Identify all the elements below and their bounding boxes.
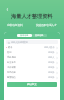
staticText: 其他信息 xyxy=(35,34,44,37)
button[interactable]: * xyxy=(4,45,60,50)
staticText: 基本信息 xyxy=(20,34,29,37)
staticText: 请选择 xyxy=(48,71,55,74)
staticText: * xyxy=(6,46,8,49)
button[interactable]: 工作年限 xyxy=(4,65,60,70)
button[interactable]: 其他信息 xyxy=(32,34,47,37)
staticText: 姓名 xyxy=(8,46,13,49)
staticText: 请选择 xyxy=(48,76,55,79)
staticText: 手机号码 xyxy=(7,56,16,59)
staticText: 完善信息资料 xyxy=(7,23,23,26)
staticText: 快速匹配合适人才 xyxy=(36,23,57,26)
staticText: 海量人才整理资料 xyxy=(11,13,53,20)
button[interactable]: 手机号码 xyxy=(4,55,60,60)
staticText: 出生年月 xyxy=(7,61,16,64)
button[interactable]: 确认提交 xyxy=(7,82,57,87)
staticText: 请输入 xyxy=(48,56,55,59)
button[interactable]: 出生年月 xyxy=(4,60,60,65)
staticText: 性别 xyxy=(7,51,12,54)
staticText: 工作年限 xyxy=(7,66,16,69)
button[interactable]: 性别 xyxy=(4,50,60,55)
staticText: 请输入关键词搜索 xyxy=(11,41,28,44)
button[interactable]: Back xyxy=(5,7,10,12)
staticText: 请选择 xyxy=(48,66,55,69)
staticText: 期望职位 xyxy=(7,76,16,79)
button[interactable]: 基本信息 xyxy=(17,34,32,37)
staticText: 确认提交 xyxy=(27,83,37,86)
staticText: 请输入姓名 xyxy=(44,46,55,49)
staticText: 学历信息 xyxy=(7,71,16,74)
button[interactable]: 期望职位 xyxy=(4,75,60,80)
button[interactable]: 学历信息 xyxy=(4,70,60,75)
button[interactable]: 请输入关键词搜索 xyxy=(6,40,58,44)
staticText: 请选择 xyxy=(48,51,55,54)
staticText: 请选择 xyxy=(48,61,55,64)
